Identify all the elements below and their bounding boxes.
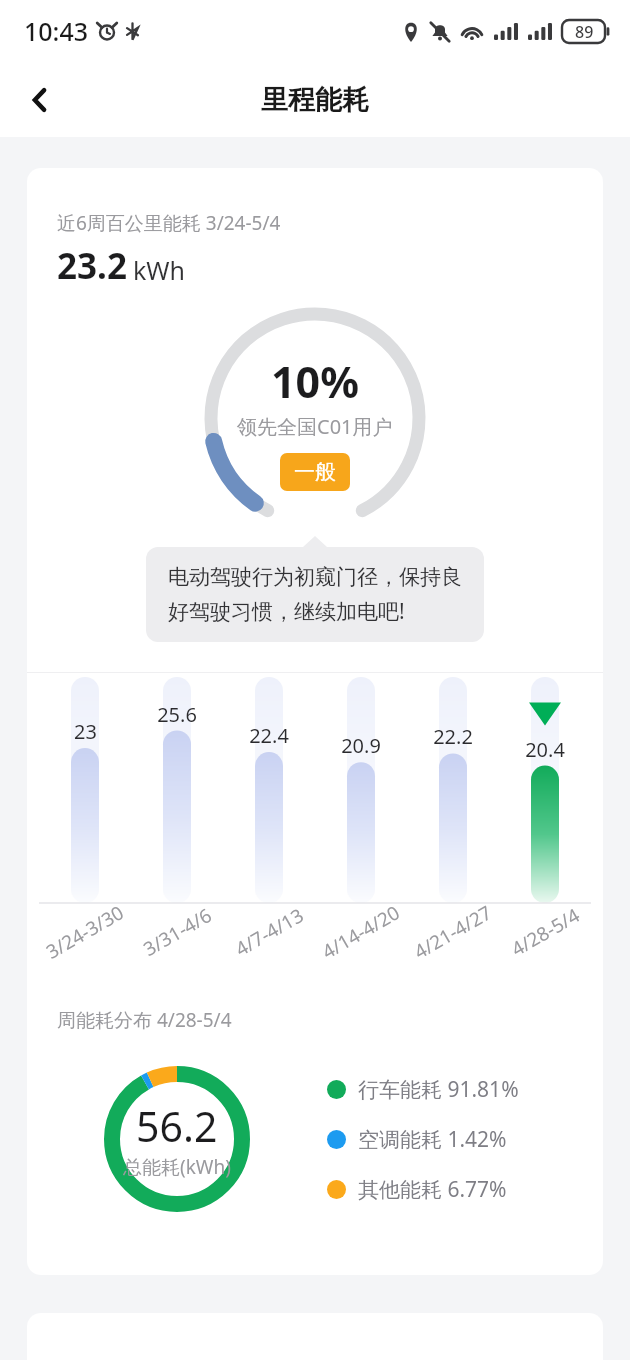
staticText: 里程能耗 xyxy=(261,83,369,117)
staticText: 电动驾驶行为初窥门径，保持良好驾驶习惯，继续加电吧! xyxy=(168,564,462,625)
button[interactable]: 其他能耗 6.77% xyxy=(327,1175,507,1204)
staticText: 一般 xyxy=(294,459,336,485)
staticText: 10:43 xyxy=(24,14,89,48)
staticText: 领先全国C01用户 xyxy=(237,413,393,440)
button[interactable]: 空调能耗 1.42% xyxy=(327,1125,507,1154)
staticText: 20.4 xyxy=(525,736,565,763)
staticText: 周能耗分布 4/28-5/4 xyxy=(57,1007,232,1033)
staticText: 行车能耗 91.81% xyxy=(358,1075,519,1104)
staticText: 近6周百公里能耗 3/24-5/4 xyxy=(57,210,281,236)
staticText: 4/21-4/27 xyxy=(409,899,497,965)
staticText: 空调能耗 1.42% xyxy=(358,1125,507,1154)
staticText: 23 xyxy=(74,718,97,745)
button[interactable]: 行车能耗 91.81% xyxy=(327,1075,519,1104)
button[interactable]: 一般 xyxy=(280,453,350,491)
staticText: kWh xyxy=(133,253,186,287)
staticText: 25.6 xyxy=(157,701,197,728)
staticText: 20.9 xyxy=(341,732,381,759)
button[interactable]: Back xyxy=(0,62,80,137)
staticText: 22.2 xyxy=(433,723,473,750)
staticText: 23.2 xyxy=(57,242,127,290)
staticText: 3/31-4/6 xyxy=(138,902,216,962)
staticText: 22.4 xyxy=(249,722,289,749)
staticText: 3/24-3/30 xyxy=(41,899,129,965)
staticText: 10% xyxy=(271,352,359,411)
staticText: 其他能耗 6.77% xyxy=(358,1175,507,1204)
staticText: 4/28-5/4 xyxy=(506,902,584,962)
staticText: 4/14-4/20 xyxy=(317,899,405,965)
staticText: 56.2 xyxy=(136,1098,218,1154)
staticText: 89 xyxy=(575,21,594,43)
staticText: 4/7-4/13 xyxy=(230,902,308,962)
staticText: 总能耗(kWh) xyxy=(123,1154,231,1180)
